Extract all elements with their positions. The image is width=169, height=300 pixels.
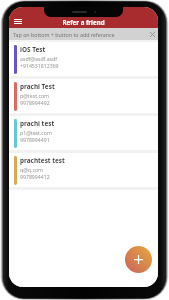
staticText: asdf@asdf.asdf [20, 55, 58, 62]
staticText: +914531812369 [20, 62, 59, 69]
button[interactable]: prachi Test [9, 79, 158, 113]
button[interactable]: Menu [11, 15, 24, 28]
staticText: prachi test [20, 119, 55, 128]
button[interactable]: prachtest test [9, 153, 158, 187]
button[interactable]: Add reference [125, 246, 152, 273]
staticText: p1@test.com [20, 129, 52, 136]
button[interactable]: prachi test [9, 116, 158, 150]
button[interactable]: Close [146, 28, 158, 40]
staticText: 9978994492 [20, 99, 50, 106]
staticText: iOS Test [20, 45, 46, 54]
staticText: Refer a friend [62, 18, 105, 26]
staticText: prachi Test [20, 82, 55, 91]
staticText: Tap on bottom + button to add referance [13, 31, 115, 38]
staticText: p@test.com [20, 92, 49, 99]
staticText: 9978994412 [20, 173, 50, 180]
staticText: prachtest test [20, 156, 65, 165]
staticText: 9978994491 [20, 136, 50, 143]
button[interactable]: iOS Test [9, 42, 158, 76]
staticText: q@q.com [20, 166, 43, 173]
